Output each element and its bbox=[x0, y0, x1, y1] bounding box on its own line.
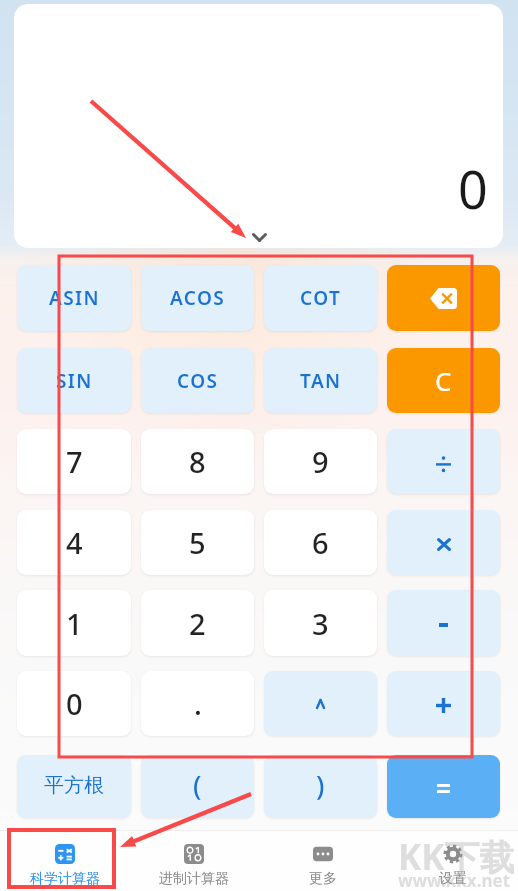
staticText: C bbox=[435, 363, 452, 398]
staticText: 2 bbox=[189, 604, 206, 643]
button[interactable] bbox=[387, 510, 500, 575]
button[interactable]: 平方根 bbox=[17, 755, 131, 818]
staticText: 更多 bbox=[309, 870, 337, 888]
button[interactable]: 5 bbox=[141, 510, 254, 575]
staticText: . bbox=[194, 684, 202, 723]
staticText: 设置 bbox=[439, 870, 467, 888]
button[interactable]: 6 bbox=[264, 510, 377, 575]
staticText: 5 bbox=[189, 523, 206, 562]
staticText: 4 bbox=[66, 523, 83, 562]
button[interactable]: 2 bbox=[141, 590, 254, 656]
other: Backspace bbox=[430, 288, 457, 309]
staticText: COS bbox=[177, 368, 219, 394]
button[interactable] bbox=[387, 590, 500, 656]
staticText: 6 bbox=[312, 523, 329, 562]
staticText: ASIN bbox=[49, 285, 100, 311]
staticText: COT bbox=[300, 285, 342, 311]
staticText: ( bbox=[193, 767, 202, 804]
button[interactable]: 科学计算器 bbox=[0, 831, 129, 891]
button[interactable]: 进制计算器 bbox=[129, 831, 258, 891]
staticText: ) bbox=[316, 767, 325, 804]
button[interactable]: 3 bbox=[264, 590, 377, 656]
button[interactable]: ASIN bbox=[17, 265, 131, 331]
button[interactable]: C bbox=[387, 348, 500, 413]
button[interactable]: COS bbox=[141, 348, 254, 413]
button[interactable] bbox=[264, 671, 377, 736]
button[interactable]: 7 bbox=[17, 429, 131, 494]
staticText: 0 bbox=[458, 153, 488, 224]
button[interactable]: 更多 bbox=[258, 831, 388, 891]
button[interactable]: TAN bbox=[264, 348, 377, 413]
button[interactable] bbox=[387, 671, 500, 736]
button[interactable]: SIN bbox=[17, 348, 131, 413]
button[interactable]: 9 bbox=[264, 429, 377, 494]
staticText: 科学计算器 bbox=[30, 870, 100, 888]
button[interactable]: ACOS bbox=[141, 265, 254, 331]
staticText: TAN bbox=[300, 368, 342, 394]
button[interactable]: COT bbox=[264, 265, 377, 331]
button[interactable]: 设置 bbox=[388, 831, 518, 891]
staticText: SIN bbox=[56, 368, 93, 394]
button[interactable]: . bbox=[141, 671, 254, 736]
button[interactable]: Backspace bbox=[387, 265, 500, 331]
staticText: www.kkx.net bbox=[398, 869, 511, 891]
staticText: 0 bbox=[66, 684, 83, 723]
button[interactable]: Collapse keypad bbox=[239, 226, 279, 248]
button[interactable]: 8 bbox=[141, 429, 254, 494]
staticText: 平方根 bbox=[44, 773, 104, 798]
button[interactable]: ( bbox=[141, 755, 254, 818]
button[interactable] bbox=[387, 429, 500, 494]
staticText: 进制计算器 bbox=[159, 870, 229, 888]
button[interactable] bbox=[387, 755, 500, 818]
button[interactable]: 4 bbox=[17, 510, 131, 575]
staticText: 3 bbox=[312, 604, 329, 643]
staticText: 9 bbox=[312, 442, 329, 481]
button[interactable]: ) bbox=[264, 755, 377, 818]
staticText: 8 bbox=[189, 442, 206, 481]
button[interactable]: 0 bbox=[17, 671, 131, 736]
button[interactable]: 1 bbox=[17, 590, 131, 656]
staticText: 1 bbox=[66, 604, 83, 643]
staticText: 7 bbox=[66, 442, 83, 481]
staticText: ACOS bbox=[170, 285, 226, 311]
staticText: KK下载 bbox=[398, 833, 515, 881]
